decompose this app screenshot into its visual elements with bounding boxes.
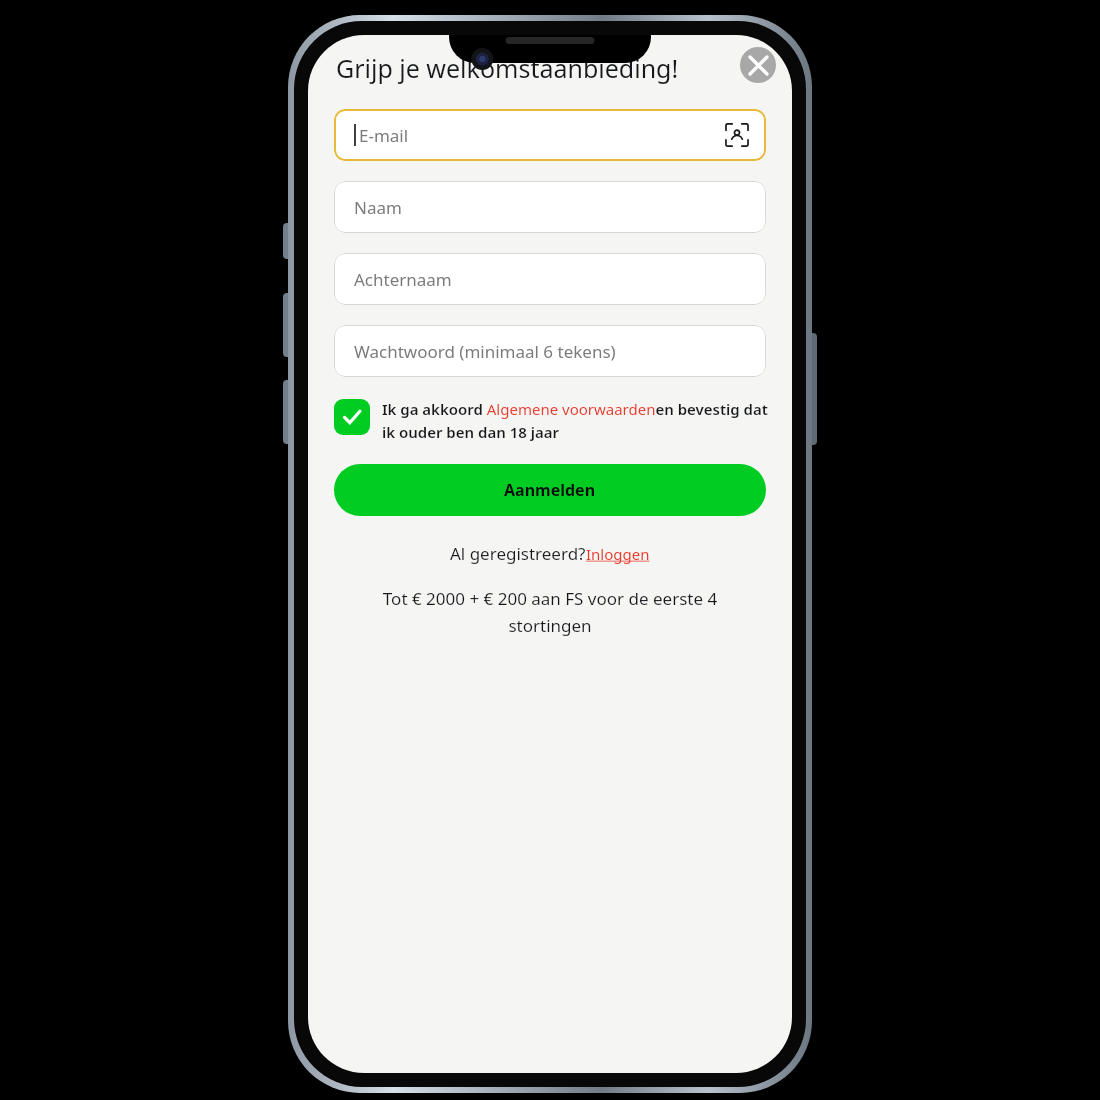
staticText: Inloggen	[586, 544, 650, 564]
staticText: Grijp je welkomstaanbieding!	[336, 51, 679, 85]
staticText: Al geregistreerd?	[450, 542, 586, 565]
button[interactable]: Ik ga akkoord Algemene voorwaardenen bev…	[334, 399, 768, 442]
button[interactable]: E-mail	[334, 109, 766, 161]
button[interactable]: Naam	[334, 181, 766, 233]
staticText: Tot € 2000 + € 200 aan FS voor de eerste…	[342, 587, 758, 637]
staticText: Aanmelden	[504, 479, 596, 501]
staticText: E-mail	[359, 124, 409, 147]
button[interactable]: Inloggen	[586, 544, 650, 564]
button[interactable]: Achternaam	[334, 253, 766, 305]
button[interactable]: Contact kiezen	[724, 122, 750, 148]
staticText: Wachtwoord (minimaal 6 tekens)	[354, 340, 616, 363]
staticText: Achternaam	[354, 268, 452, 291]
button[interactable]: Sluiten	[740, 47, 776, 83]
staticText: Ik ga akkoord Algemene voorwaardenen bev…	[382, 399, 768, 442]
button[interactable]: Wachtwoord (minimaal 6 tekens)	[334, 325, 766, 377]
button[interactable]: Aanmelden	[334, 464, 766, 516]
staticText: Naam	[354, 196, 402, 219]
